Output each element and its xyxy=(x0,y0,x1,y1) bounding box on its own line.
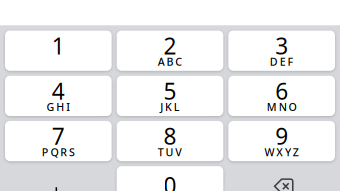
button[interactable]: 0 xyxy=(117,166,223,191)
button[interactable]: 1 xyxy=(5,30,112,71)
staticText: PQRS xyxy=(42,145,75,159)
button[interactable]: 9 xyxy=(228,121,335,161)
button[interactable]: Delete xyxy=(228,166,335,191)
staticText: MNO xyxy=(267,100,296,114)
staticText: 5 xyxy=(163,76,176,106)
staticText: 2 xyxy=(163,31,176,61)
staticText: TUV xyxy=(158,145,182,159)
button[interactable]: 7 xyxy=(5,121,112,161)
button[interactable]: 6 xyxy=(228,76,335,116)
staticText: 9 xyxy=(275,121,288,151)
staticText: GHI xyxy=(46,100,70,114)
button[interactable]: 8 xyxy=(117,121,223,161)
staticText: DEF xyxy=(270,55,293,69)
button[interactable]: 2 xyxy=(117,30,223,71)
button[interactable]: 3 xyxy=(228,30,335,71)
button[interactable]: 5 xyxy=(117,76,223,116)
staticText: 8 xyxy=(163,121,176,151)
staticText: ABC xyxy=(158,55,182,69)
staticText: 1 xyxy=(52,31,65,61)
staticText: JKL xyxy=(160,100,180,114)
staticText: 7 xyxy=(52,121,65,151)
staticText: WXYZ xyxy=(264,145,299,159)
staticText: 3 xyxy=(275,31,288,61)
staticText: 0 xyxy=(163,170,176,191)
button[interactable]: Plus, star, pound xyxy=(5,166,112,191)
staticText: 6 xyxy=(275,76,288,106)
button[interactable]: 4 xyxy=(5,76,112,116)
staticText: 4 xyxy=(52,76,65,106)
